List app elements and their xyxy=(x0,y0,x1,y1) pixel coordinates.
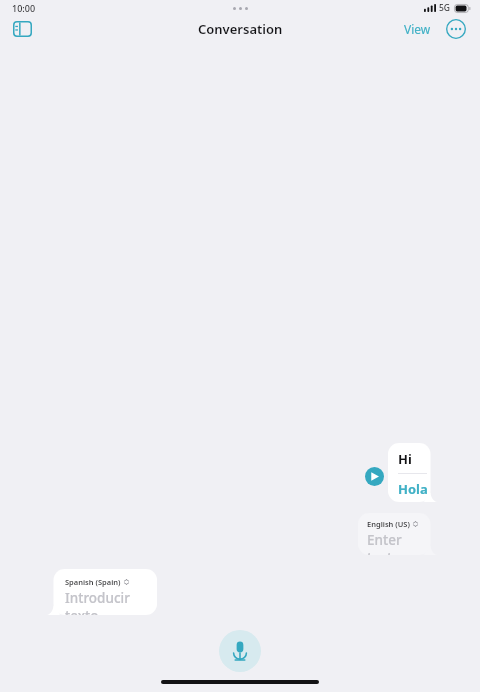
button[interactable]: Play translation xyxy=(364,466,384,486)
staticText: 10:00 xyxy=(12,2,36,14)
button[interactable]: Start listening xyxy=(219,630,261,672)
button[interactable]: Introducir texto xyxy=(47,569,157,615)
staticText: View xyxy=(404,21,431,37)
staticText: English (US) xyxy=(367,519,410,529)
staticText: 5G xyxy=(439,2,451,14)
button[interactable]: View xyxy=(399,16,436,42)
staticText: Hola xyxy=(398,480,428,498)
staticText: Conversation xyxy=(198,20,283,38)
staticText: Introducir texto xyxy=(65,589,157,615)
button[interactable]: More options xyxy=(443,16,469,42)
button[interactable]: Show sidebar xyxy=(7,14,37,44)
staticText: Spanish (Spain) xyxy=(65,577,121,587)
staticText: Enter text xyxy=(367,531,430,555)
button[interactable]: Enter English text xyxy=(358,513,437,555)
staticText: Hi xyxy=(398,450,412,468)
